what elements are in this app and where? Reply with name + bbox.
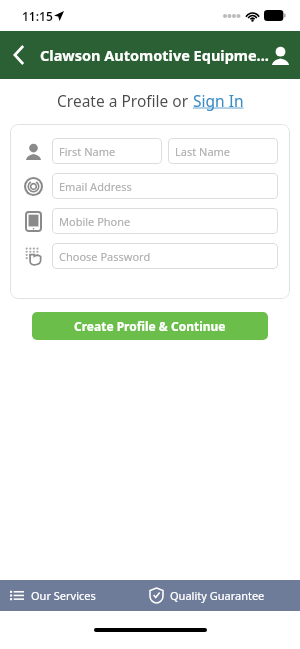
- staticText: Quality Guarantee: [170, 588, 265, 603]
- staticText: Sign In: [193, 90, 244, 111]
- button[interactable]: Account: [260, 35, 300, 75]
- staticText: Choose Password: [59, 249, 151, 264]
- button[interactable]: Our Services: [0, 580, 150, 611]
- staticText: Clawson Automotive Equipme...: [40, 45, 269, 65]
- staticText: Email Address: [59, 179, 132, 194]
- staticText: 11:15: [22, 8, 53, 24]
- staticText: Last Name: [175, 144, 231, 159]
- button[interactable]: Choose Password: [52, 243, 278, 269]
- staticText: Our Services: [31, 588, 96, 603]
- button[interactable]: Mobile Phone: [52, 208, 278, 234]
- button[interactable]: Sign In: [193, 90, 244, 111]
- staticText: First Name: [59, 144, 116, 159]
- button[interactable]: Quality Guarantee: [150, 580, 300, 611]
- button[interactable]: Last Name: [168, 138, 278, 164]
- staticText: Create a Profile or: [57, 90, 193, 111]
- staticText: Mobile Phone: [59, 214, 131, 229]
- staticText: Create Profile & Continue: [74, 318, 226, 334]
- button[interactable]: Create Profile & Continue: [32, 312, 268, 340]
- button[interactable]: Back: [0, 36, 38, 74]
- button[interactable]: First Name: [52, 138, 162, 164]
- button[interactable]: Email Address: [52, 173, 278, 199]
